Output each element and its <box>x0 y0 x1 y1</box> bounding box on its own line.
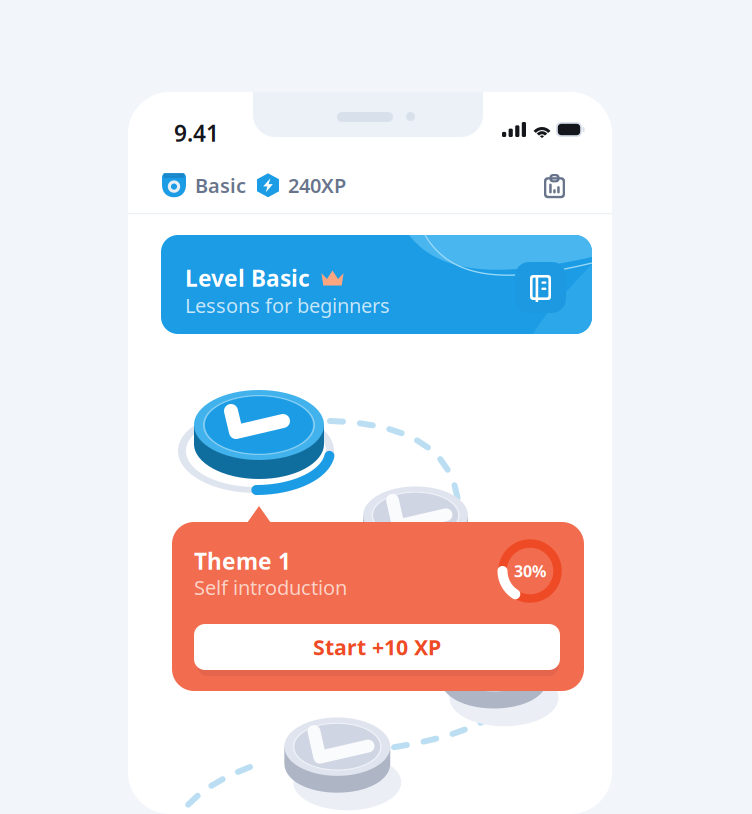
button[interactable]: Start +10 XP <box>194 624 563 676</box>
staticText: 30% <box>514 560 546 582</box>
staticText: 9.41 <box>174 118 219 148</box>
button[interactable]: Basic <box>162 172 246 199</box>
staticText: Theme 1 <box>194 546 291 576</box>
button[interactable]: 240XP <box>257 172 346 199</box>
staticText: Basic <box>195 172 246 199</box>
staticText: Start +10 XP <box>313 633 441 661</box>
button[interactable]: Lessons <box>515 262 566 313</box>
staticText: Lessons for beginners <box>185 292 390 319</box>
staticText: Level Basic <box>185 263 310 293</box>
staticText: 240XP <box>288 172 346 199</box>
button[interactable]: Statistics <box>535 165 574 207</box>
staticText: Self introduction <box>194 574 347 601</box>
